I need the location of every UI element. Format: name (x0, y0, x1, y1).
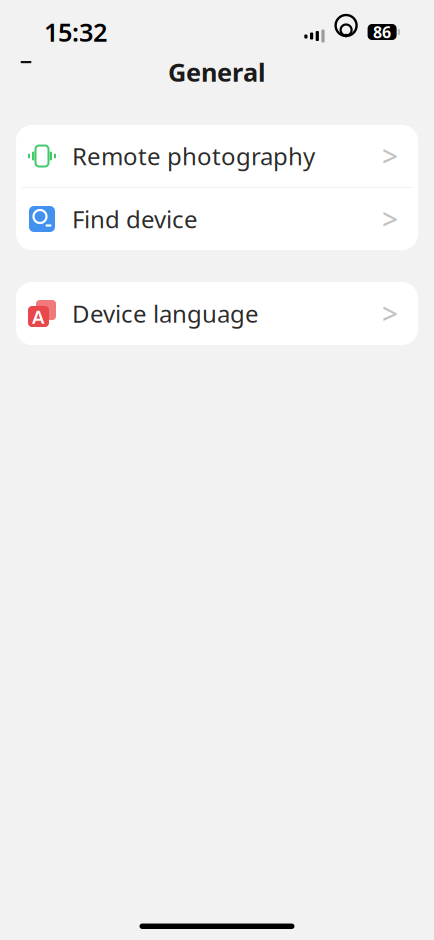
staticText: > (382, 137, 398, 175)
staticText: 15:32 (44, 15, 107, 49)
button[interactable]: Remote photography (16, 125, 418, 187)
staticText: General (168, 55, 266, 89)
staticText: Device language (72, 298, 259, 329)
button[interactable]: Back (4, 50, 48, 94)
staticText: Find device (72, 203, 198, 235)
staticText: > (382, 295, 398, 332)
staticText: 86 (373, 21, 391, 43)
staticText: Remote photography (72, 140, 315, 172)
button[interactable]: A (16, 282, 418, 345)
staticText: > (382, 200, 398, 238)
button[interactable]: Find device (16, 188, 418, 250)
staticText: A (32, 304, 45, 329)
